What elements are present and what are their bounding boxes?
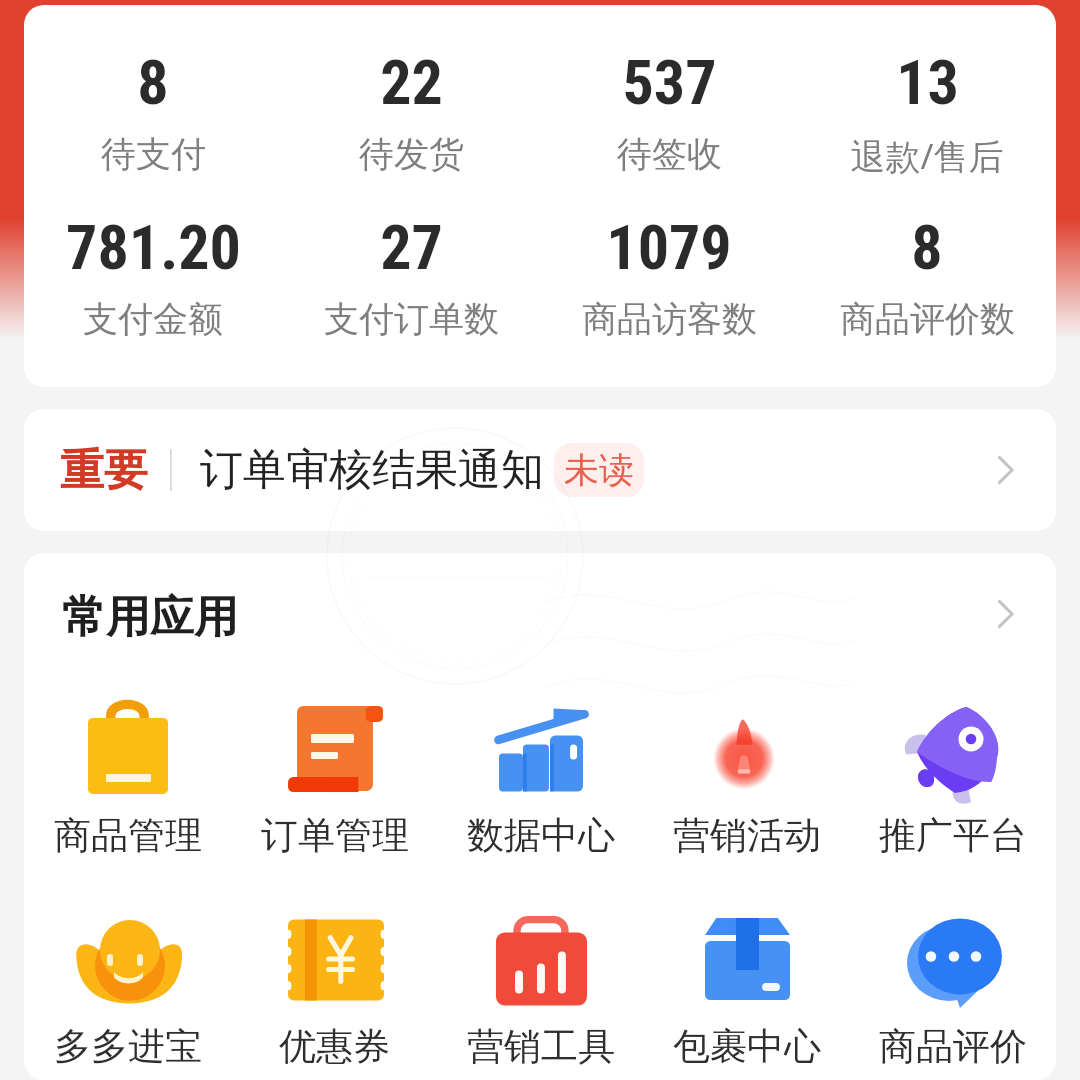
staticText: 常用应用 [62, 590, 238, 645]
staticText: 待支付 [101, 132, 206, 176]
other: Open notice [986, 450, 1026, 490]
staticText: 订单审核结果通知 [200, 443, 544, 497]
staticText: 537 [622, 46, 717, 119]
button[interactable]: 8 [798, 211, 1056, 341]
staticText: 营销活动 [673, 812, 821, 859]
staticText: 推广平台 [879, 812, 1027, 859]
staticText: 商品访客数 [582, 297, 757, 341]
button[interactable]: 营销活动 [644, 692, 850, 859]
staticText: 未读 [564, 448, 634, 492]
staticText: 退款/售后 [850, 132, 1004, 180]
staticText: 支付订单数 [324, 297, 499, 341]
button[interactable]: 数据中心 [438, 692, 644, 859]
button[interactable]: 13 [798, 46, 1056, 180]
button[interactable]: 商品管理 [24, 692, 231, 859]
staticText: 支付金额 [83, 297, 223, 341]
staticText: 包裹中心 [673, 1023, 821, 1070]
staticText: 8 [137, 46, 169, 119]
button[interactable]: 1079 [540, 211, 798, 341]
staticText: 商品评价 [879, 1023, 1027, 1070]
staticText: 22 [380, 46, 443, 119]
staticText: 待发货 [359, 132, 464, 176]
staticText: 订单管理 [261, 812, 409, 859]
button[interactable]: 商品评价 [850, 903, 1056, 1070]
other: More apps [986, 594, 1026, 634]
staticText: 27 [380, 211, 443, 284]
button[interactable]: 537 [540, 46, 798, 176]
button[interactable]: 27 [282, 211, 540, 341]
button[interactable]: 781.20 [24, 211, 282, 341]
staticText: 781.20 [66, 211, 241, 284]
button[interactable]: 包裹中心 [644, 903, 850, 1070]
button[interactable]: 8 [24, 46, 282, 176]
staticText: 数据中心 [467, 812, 615, 859]
button[interactable]: 常用应用 [24, 553, 1056, 681]
button[interactable]: 重要 [24, 409, 1056, 531]
staticText: 商品管理 [54, 812, 202, 859]
staticText: 待签收 [617, 132, 722, 176]
staticText: 1079 [606, 211, 732, 284]
button[interactable]: 营销工具 [438, 903, 644, 1070]
button[interactable]: 订单管理 [231, 692, 438, 859]
staticText: 商品评价数 [840, 297, 1015, 341]
staticText: 营销工具 [467, 1023, 615, 1070]
button[interactable]: 推广平台 [850, 692, 1056, 859]
staticText: 多多进宝 [54, 1023, 202, 1070]
button[interactable]: 多多进宝 [24, 903, 231, 1070]
staticText: 8 [911, 211, 943, 284]
staticText: 重要 [60, 443, 148, 498]
button[interactable]: 22 [282, 46, 540, 176]
staticText: 13 [896, 46, 959, 119]
button[interactable]: 优惠券 [231, 903, 438, 1070]
staticText: 优惠券 [279, 1023, 390, 1070]
